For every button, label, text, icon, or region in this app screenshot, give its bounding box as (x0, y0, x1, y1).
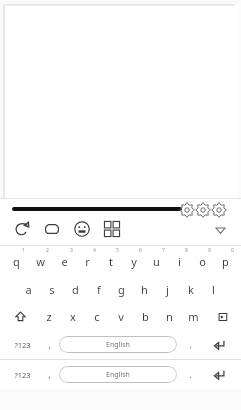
staticText: . (189, 339, 192, 350)
staticText: p (222, 254, 229, 269)
button[interactable]: o (191, 246, 214, 276)
staticText: 5 (116, 247, 119, 254)
staticText: l (212, 282, 215, 297)
button[interactable]: q (4, 246, 28, 276)
staticText: , (48, 369, 51, 380)
staticText: h (141, 282, 148, 297)
button[interactable]: t (99, 246, 122, 276)
button[interactable]: d (64, 276, 87, 303)
staticText: 6 (139, 247, 142, 254)
staticText: English (106, 340, 130, 350)
button[interactable]: , (39, 330, 59, 359)
button[interactable]: v (109, 303, 133, 330)
button[interactable]: ?123 (5, 360, 39, 389)
button[interactable]: Enter (204, 360, 236, 389)
button[interactable]: s (40, 276, 64, 303)
staticText: r (85, 254, 90, 269)
button[interactable]: ?123 (5, 330, 39, 359)
button[interactable]: c (85, 303, 109, 330)
button[interactable]: Brush option (179, 202, 195, 218)
staticText: . (189, 369, 192, 380)
button[interactable]: f (87, 276, 110, 303)
button[interactable]: Collapse (213, 223, 227, 237)
staticText: , (48, 339, 51, 350)
button[interactable]: a (16, 276, 40, 303)
button[interactable]: l (202, 276, 225, 303)
button[interactable]: k (179, 276, 202, 303)
button[interactable]: Eraser (43, 220, 61, 238)
button[interactable]: x (61, 303, 85, 330)
button[interactable]: j (156, 276, 179, 303)
button[interactable]: Brush option (211, 202, 227, 218)
staticText: x (70, 309, 76, 324)
staticText: 8 (185, 247, 188, 254)
button[interactable]: h (133, 276, 156, 303)
staticText: z (46, 309, 52, 324)
button[interactable]: p (214, 246, 237, 276)
staticText: d (72, 282, 79, 297)
button[interactable]: n (157, 303, 181, 330)
button[interactable]: b (133, 303, 157, 330)
staticText: w (36, 254, 45, 269)
button[interactable]: w (28, 246, 52, 276)
staticText: m (188, 309, 199, 324)
button[interactable]: Backspace (205, 303, 237, 330)
staticText: ?123 (14, 370, 31, 380)
staticText: 0 (231, 247, 234, 254)
button[interactable]: Enter (204, 330, 236, 359)
staticText: t (109, 254, 113, 269)
staticText: 2 (46, 247, 49, 254)
staticText: 4 (93, 247, 96, 254)
staticText: j (166, 282, 169, 297)
button[interactable]: English (59, 366, 177, 383)
staticText: g (118, 282, 125, 297)
staticText: u (153, 254, 160, 269)
staticText: f (97, 282, 101, 297)
staticText: 3 (70, 247, 73, 254)
staticText: q (13, 254, 20, 269)
button[interactable]: Undo (13, 220, 31, 238)
button[interactable]: u (145, 246, 168, 276)
button[interactable]: z (37, 303, 61, 330)
staticText: k (188, 282, 194, 297)
staticText: ?123 (14, 340, 31, 350)
staticText: v (118, 309, 124, 324)
button[interactable]: Shift (4, 303, 37, 330)
staticText: y (131, 254, 137, 269)
button[interactable]: . (177, 330, 204, 359)
staticText: 9 (208, 247, 211, 254)
button[interactable]: , (39, 360, 59, 389)
staticText: i (178, 254, 181, 269)
staticText: c (94, 309, 100, 324)
button[interactable]: y (122, 246, 145, 276)
staticText: e (61, 254, 68, 269)
button[interactable]: . (177, 360, 204, 389)
button[interactable]: i (168, 246, 191, 276)
button[interactable]: Brush option (195, 202, 211, 218)
button[interactable]: More tools (103, 220, 121, 238)
staticText: 1 (22, 247, 25, 254)
button[interactable]: Emoji (73, 220, 91, 238)
staticText: 7 (162, 247, 165, 254)
staticText: b (142, 309, 149, 324)
staticText: n (166, 309, 173, 324)
staticText: o (199, 254, 206, 269)
button[interactable]: e (52, 246, 76, 276)
button[interactable]: g (110, 276, 133, 303)
button[interactable]: r (76, 246, 99, 276)
button[interactable]: English (59, 336, 177, 353)
staticText: s (49, 282, 55, 297)
staticText: English (106, 370, 130, 380)
button[interactable]: m (181, 303, 205, 330)
staticText: a (25, 282, 32, 297)
